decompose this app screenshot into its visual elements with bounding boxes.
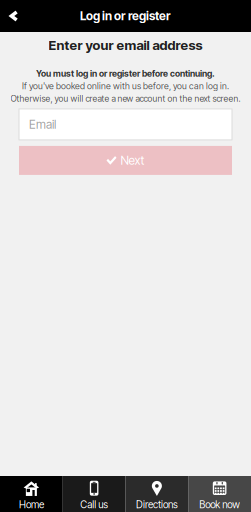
button[interactable]: Book now [188, 476, 251, 512]
staticText: If you've booked online with us before, … [22, 81, 229, 91]
staticText: Book now [199, 498, 240, 511]
staticText: Enter your email address [48, 37, 202, 53]
staticText: Directions [136, 498, 178, 511]
button[interactable]: Next [19, 146, 232, 175]
staticText: Log in or register [80, 9, 171, 23]
staticText: You must log in or register before conti… [36, 68, 215, 79]
button[interactable]: Directions [125, 476, 188, 512]
staticText: Home [19, 498, 44, 511]
staticText: Email [29, 117, 56, 132]
staticText: Call us [80, 498, 108, 511]
button[interactable]: Back [0, 0, 28, 32]
staticText: Otherwise, you will create a new account… [10, 93, 240, 104]
button[interactable]: Call us [63, 476, 126, 512]
button[interactable]: Home [0, 476, 63, 512]
staticText: Next [120, 153, 144, 168]
